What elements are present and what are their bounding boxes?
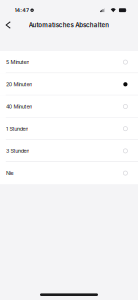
button[interactable]: 1 Stunden — [0, 118, 138, 140]
button[interactable]: 5 Minuten — [0, 51, 138, 73]
staticText: 3 Stunden — [6, 148, 29, 154]
button[interactable]: 40 Minuten — [0, 95, 138, 118]
staticText: 1 Stunden — [6, 125, 28, 132]
staticText: Automatisches Abschalten — [29, 21, 109, 29]
staticText: 5 Minuten — [6, 59, 29, 65]
staticText: 40 Minuten — [6, 103, 32, 110]
staticText: 20 Minuten — [6, 81, 32, 88]
button[interactable]: Nie — [0, 162, 138, 184]
button[interactable]: Back — [0, 16, 16, 34]
staticText: 14:47 — [15, 7, 29, 13]
button[interactable]: 3 Stunden — [0, 140, 138, 162]
staticText: Nie — [6, 170, 14, 176]
button[interactable]: 20 Minuten — [0, 73, 138, 95]
